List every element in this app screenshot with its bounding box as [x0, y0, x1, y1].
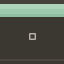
button[interactable]: Card — [29, 33, 36, 40]
button[interactable]: Navigation menu — [0, 4, 64, 17]
